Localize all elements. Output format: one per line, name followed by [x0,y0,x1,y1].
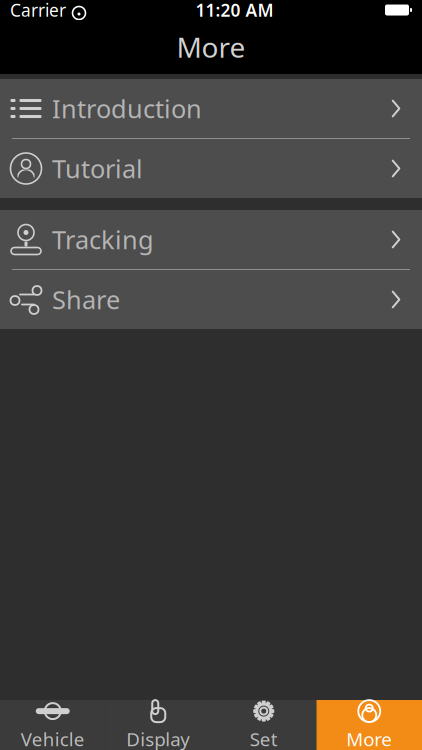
staticText: 11:20 AM [195,0,273,21]
staticText: Tutorial [52,152,143,185]
staticText: Tracking [52,223,154,256]
staticText: Introduction [52,92,202,125]
staticText: Display [126,727,190,750]
button[interactable]: Share [0,270,422,329]
staticText: More [346,727,392,750]
button[interactable]: Display [105,700,211,750]
staticText: Carrier [10,0,66,21]
button[interactable]: Set [211,700,316,750]
staticText: Set [250,727,278,750]
staticText: More [176,28,245,66]
staticText: Share [52,283,120,316]
staticText: Vehicle [21,727,85,750]
button[interactable]: More [316,700,422,750]
button[interactable]: Tracking [0,210,422,269]
button[interactable]: Tutorial [0,139,422,198]
button[interactable]: Vehicle [0,700,105,750]
button[interactable]: Introduction [0,79,422,138]
